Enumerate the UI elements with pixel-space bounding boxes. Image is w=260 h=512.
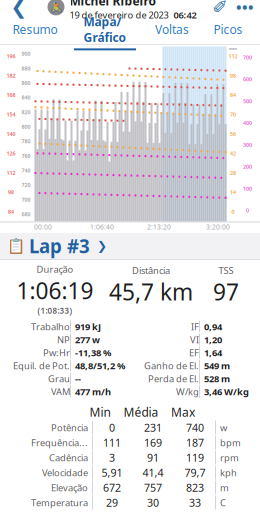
staticText: Michel Ribeiro xyxy=(69,0,156,9)
staticText: bpm xyxy=(220,436,241,449)
button[interactable]: Edit xyxy=(208,0,232,20)
staticText: Perda de El. xyxy=(148,372,199,385)
staticText: 823 xyxy=(186,480,204,495)
staticText: 169 xyxy=(144,435,162,450)
staticText: 400 xyxy=(243,119,252,127)
staticText: 3:20:00 xyxy=(206,222,230,231)
staticText: Cadência xyxy=(49,451,88,464)
staticText: 06:42 xyxy=(173,9,196,21)
staticText: 800 xyxy=(21,123,30,130)
staticText: Equil. de Pot. xyxy=(13,359,70,372)
staticText: 100 xyxy=(243,185,252,192)
staticText: 28 xyxy=(230,169,236,176)
staticText: Média xyxy=(123,404,158,420)
staticText: 140 xyxy=(6,130,15,137)
staticText: Lap #3 xyxy=(29,233,90,258)
staticText: 200 xyxy=(243,163,252,170)
staticText: 29 xyxy=(106,495,118,510)
staticText: 0 xyxy=(231,208,234,215)
staticText: 840 xyxy=(21,94,30,101)
staticText: Resumo xyxy=(12,21,57,37)
button[interactable]: Picos xyxy=(200,20,256,44)
staticText: Ganho de El. xyxy=(144,359,199,372)
staticText: w xyxy=(220,421,227,434)
staticText: 919 kJ xyxy=(75,320,101,333)
staticText: 119 xyxy=(186,450,204,465)
staticText: 880 xyxy=(21,65,30,72)
staticText: 1:06:40 xyxy=(90,222,114,231)
button[interactable]: More options xyxy=(232,0,258,20)
staticText: 112 xyxy=(6,169,15,176)
staticText: 33 xyxy=(189,495,201,510)
staticText: 680 xyxy=(21,211,30,218)
staticText: ❯ xyxy=(97,239,107,253)
staticText: 168 xyxy=(6,91,15,99)
staticText: 42 xyxy=(230,150,236,157)
staticText: 1,64 xyxy=(204,346,222,359)
staticText: W/kg xyxy=(176,385,199,398)
staticText: 720 xyxy=(21,181,30,188)
staticText: 112 xyxy=(228,53,237,60)
staticText: Potência xyxy=(51,421,88,434)
staticText: Mapa/Gráfico xyxy=(83,13,126,45)
staticText: 477 m/h xyxy=(75,385,111,398)
staticText: 760 xyxy=(21,152,30,159)
staticText: 3,46 W/kg xyxy=(204,385,249,398)
button[interactable]: Resumo xyxy=(4,20,66,44)
staticText: 91 xyxy=(147,450,159,465)
staticText: 19 de fevereiro de 2023 xyxy=(69,9,168,21)
staticText: 196 xyxy=(6,53,15,60)
staticText: 700 xyxy=(243,54,252,61)
button[interactable]: Back xyxy=(2,0,36,20)
staticText: 860 xyxy=(21,79,30,86)
staticText: 5,91 xyxy=(101,465,122,480)
staticText: ❮ xyxy=(10,0,27,18)
staticText: Trabalho xyxy=(31,320,70,333)
staticText: Max xyxy=(171,404,195,420)
staticText: 98 xyxy=(230,72,236,79)
staticText: 549 m xyxy=(204,359,230,372)
staticText: 740 xyxy=(21,167,30,174)
staticText: 528 m xyxy=(204,372,230,385)
staticText: 🚴 xyxy=(49,1,62,13)
staticText: ••• xyxy=(236,0,254,17)
staticText: 231 xyxy=(144,420,162,435)
staticText: 48,8/51,2 % xyxy=(75,359,125,372)
staticText: -11,38 % xyxy=(75,346,111,359)
staticText: Min xyxy=(89,404,110,420)
button[interactable]: Voltas xyxy=(144,20,200,44)
staticText: 277 w xyxy=(75,333,100,346)
staticText: 500 xyxy=(243,98,252,105)
staticText: Elevação xyxy=(51,481,88,494)
staticText: 740 xyxy=(186,420,204,435)
staticText: 900 xyxy=(21,50,30,57)
staticText: -- xyxy=(75,372,81,385)
staticText: 84 xyxy=(8,208,14,215)
staticText: 3 xyxy=(109,450,115,465)
staticText: 300 xyxy=(243,141,252,148)
staticText: 187 xyxy=(186,435,204,450)
staticText: IF xyxy=(191,320,199,333)
staticText: 97 xyxy=(213,277,239,307)
staticText: 📋 xyxy=(6,238,24,254)
staticText: Duração xyxy=(36,263,73,275)
button[interactable]: 📋 xyxy=(0,233,260,259)
staticText: 600 xyxy=(243,76,252,83)
staticText: 111 xyxy=(103,435,121,450)
staticText: kph xyxy=(220,466,237,479)
staticText: (1:08:33) xyxy=(37,305,72,316)
staticText: 757 xyxy=(144,480,162,495)
staticText: 0,94 xyxy=(204,320,222,333)
staticText: 41,4 xyxy=(142,465,163,480)
staticText: 30 xyxy=(147,495,159,510)
button[interactable]: Mapa/Gráfico xyxy=(66,20,144,44)
staticText: 672 xyxy=(103,480,121,495)
staticText: rpm xyxy=(220,451,239,464)
staticText: Distância xyxy=(132,264,170,277)
staticText: Pw:Hr xyxy=(43,346,70,359)
staticText: ✐ xyxy=(212,0,228,17)
staticText: 154 xyxy=(6,111,15,118)
staticText: 98 xyxy=(8,189,14,196)
staticText: 79,7 xyxy=(184,465,205,480)
staticText: 84 xyxy=(230,91,236,99)
